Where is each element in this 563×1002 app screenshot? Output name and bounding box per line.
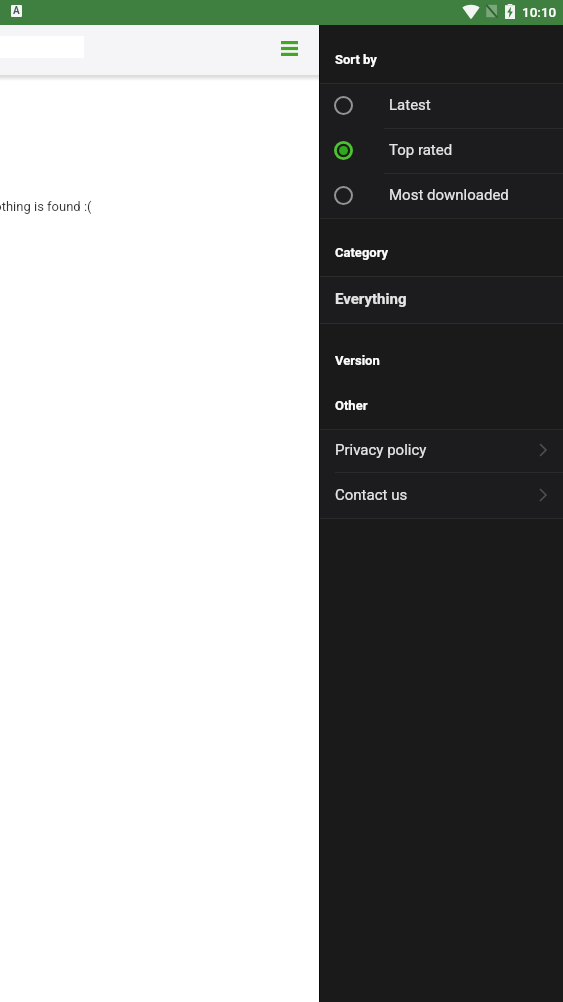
staticText: Other bbox=[335, 398, 368, 413]
staticText: Nothing is found :( bbox=[0, 199, 92, 214]
button[interactable]: Privacy policy bbox=[320, 430, 563, 472]
staticText: A bbox=[13, 5, 20, 17]
button[interactable]: Everything bbox=[320, 277, 563, 323]
staticText: Latest bbox=[389, 96, 431, 114]
button[interactable]: Latest bbox=[320, 84, 563, 128]
button[interactable]: Open filters bbox=[265, 25, 313, 74]
staticText: Top rated bbox=[389, 141, 453, 159]
staticText: Most downloaded bbox=[389, 186, 509, 204]
button[interactable]: Most downloaded bbox=[320, 174, 563, 218]
button[interactable]: Contact us bbox=[320, 473, 563, 518]
staticText: Contact us bbox=[335, 486, 408, 504]
staticText: 10:10 bbox=[522, 4, 557, 20]
staticText: Everything bbox=[335, 290, 407, 308]
staticText: Sort by bbox=[335, 52, 377, 67]
staticText: Version bbox=[335, 353, 380, 368]
button[interactable]: Top rated bbox=[320, 129, 563, 173]
staticText: Category bbox=[335, 245, 389, 260]
staticText: Privacy policy bbox=[335, 441, 427, 459]
